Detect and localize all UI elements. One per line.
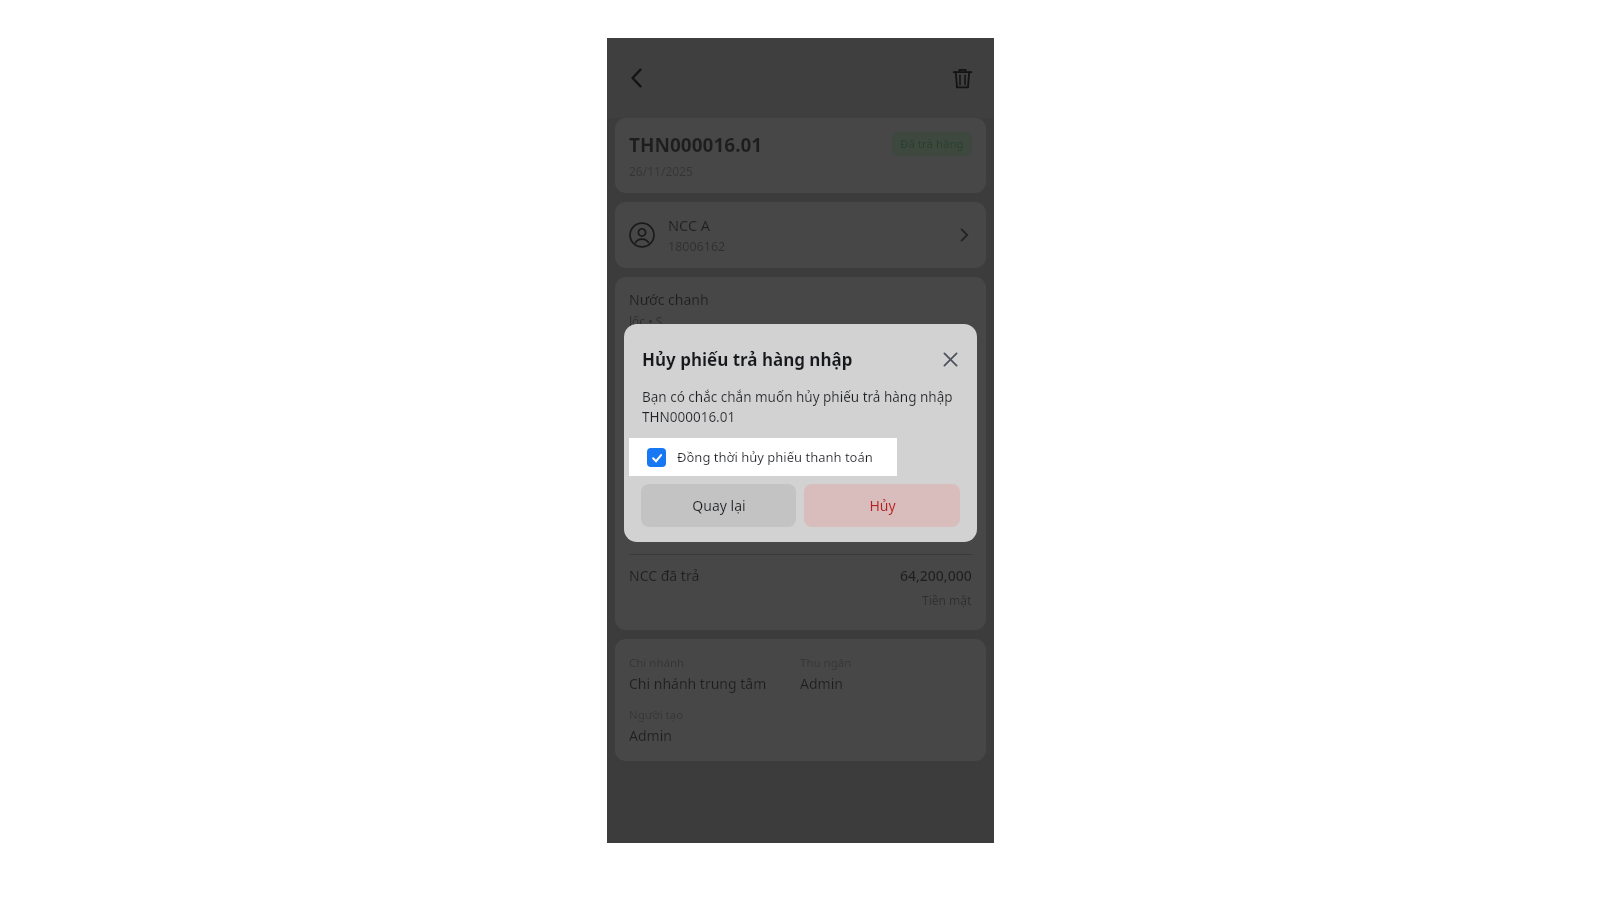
button[interactable]: Close bbox=[935, 344, 965, 374]
staticText: Chi nhánh trung tâm bbox=[629, 674, 767, 693]
staticText: Bạn có chắc chắn muốn hủy phiếu trả hàng… bbox=[642, 388, 959, 426]
staticText: Thu ngân bbox=[800, 655, 852, 671]
staticText: 18006162 bbox=[668, 238, 726, 255]
staticText: Admin bbox=[800, 674, 843, 693]
staticText: THN000016.01 bbox=[629, 132, 763, 158]
staticText: Quay lại bbox=[692, 496, 746, 515]
staticText: Hủy phiếu trả hàng nhập bbox=[642, 348, 935, 371]
staticText: 64,200,000 bbox=[900, 566, 972, 585]
button[interactable]: Quay lại bbox=[641, 484, 796, 527]
staticText: 26/11/2025 bbox=[629, 163, 693, 179]
staticText: NCC A bbox=[668, 215, 711, 235]
button[interactable]: Hủy bbox=[804, 484, 960, 527]
staticText: Chi nhánh bbox=[629, 655, 685, 671]
staticText: NCC cần trả bbox=[629, 525, 900, 544]
staticText: Người tạo bbox=[629, 707, 684, 723]
staticText: Hủy bbox=[869, 496, 896, 515]
staticText: Đã trả hàng bbox=[900, 136, 964, 152]
button[interactable]: NCC A bbox=[615, 202, 986, 268]
staticText: NCC đã trả bbox=[629, 566, 900, 585]
staticText: Nước chanh bbox=[629, 290, 709, 309]
staticText: 64,200,000 bbox=[900, 525, 972, 544]
staticText: lốc • S bbox=[629, 313, 663, 329]
staticText: Tiền mặt bbox=[922, 592, 972, 608]
button[interactable]: Back bbox=[615, 56, 659, 100]
staticText: Đồng thời hủy phiếu thanh toán bbox=[677, 448, 873, 466]
button[interactable]: Đồng thời hủy phiếu thanh toán bbox=[629, 438, 897, 476]
button[interactable]: Delete bbox=[940, 56, 984, 100]
staticText: Admin bbox=[629, 726, 672, 745]
